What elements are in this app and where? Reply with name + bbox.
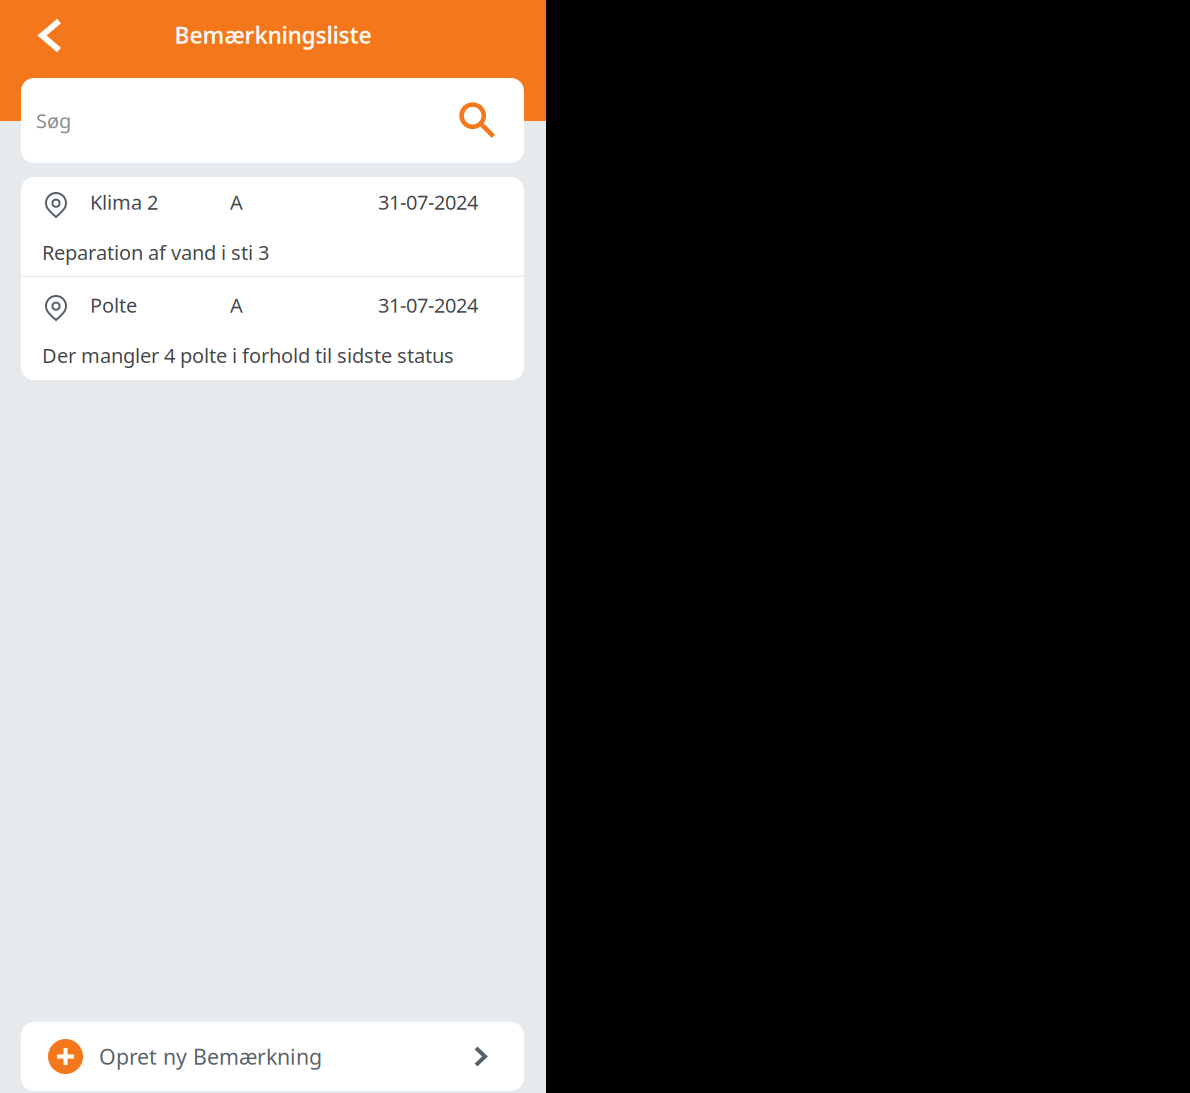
staticText: Bemærkningsliste [174,20,371,50]
button[interactable]: Klima 2 [21,177,524,276]
button[interactable]: Back [0,9,77,62]
staticText: Opret ny Bemærkning [99,1042,322,1071]
staticText: Klima 2 [90,189,158,215]
button[interactable]: Opret ny Bemærkning [0,1022,546,1091]
button[interactable]: Search [451,92,508,149]
staticText: Polte [90,292,137,318]
staticText: Reparation af vand i sti 3 [42,239,269,266]
staticText: 31-07-2024 [378,292,478,318]
staticText: A [230,292,243,318]
button[interactable]: Polte [21,277,524,380]
button[interactable]: Søg [21,78,524,163]
staticText: 31-07-2024 [378,189,478,215]
staticText: A [230,189,243,215]
staticText: Der mangler 4 polte i forhold til sidste… [42,342,454,369]
staticText: Søg [36,107,71,134]
